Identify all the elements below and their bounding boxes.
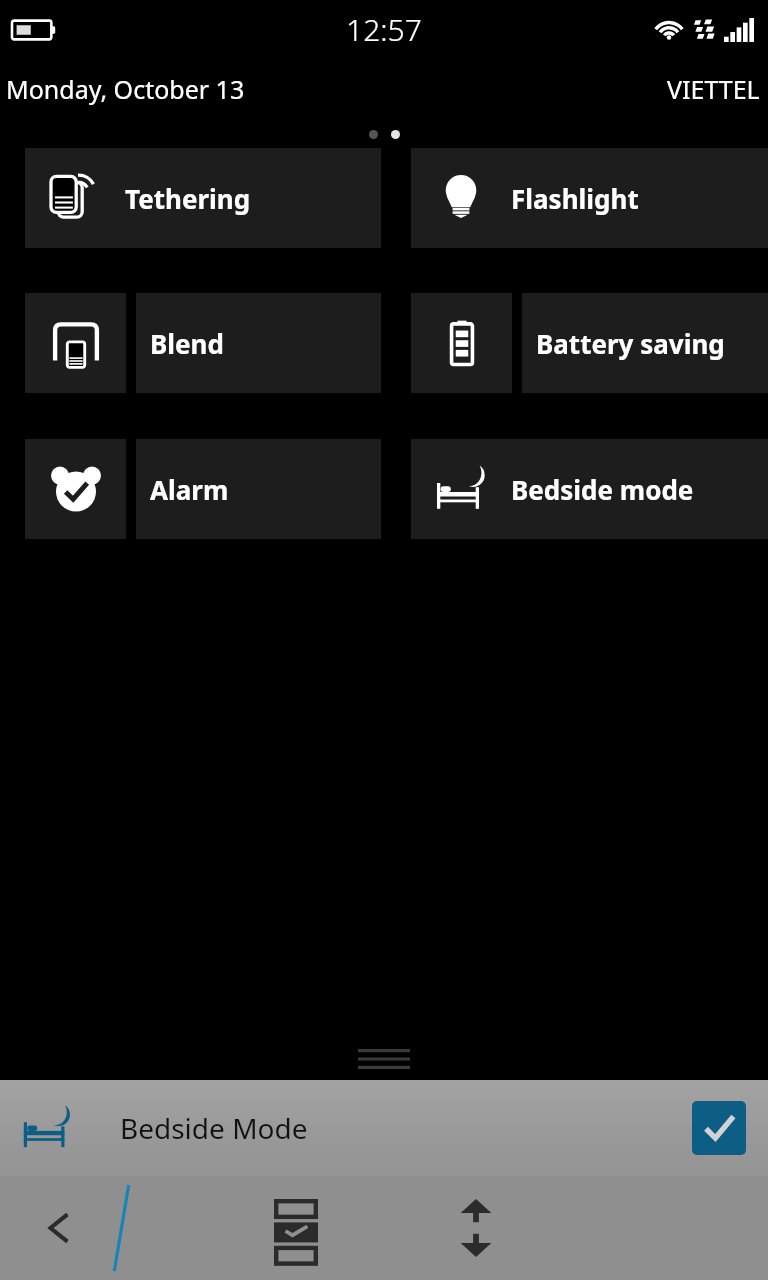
button[interactable]: Select [258, 1190, 334, 1266]
button[interactable]: Battery saving [411, 293, 768, 393]
button[interactable]: Flashlight [411, 148, 768, 248]
button[interactable]: Bedside Mode enabled [692, 1101, 746, 1155]
staticText: Tethering [125, 181, 251, 216]
staticText: Blend [150, 326, 224, 361]
staticText: Battery saving [536, 326, 725, 361]
button[interactable]: Alarm [25, 439, 381, 539]
staticText: Monday, October 13 [6, 72, 245, 106]
button[interactable]: Bedside Mode [0, 1080, 768, 1176]
staticText: Alarm [150, 472, 229, 507]
staticText: VIETTEL [667, 72, 760, 106]
staticText: Bedside mode [511, 472, 694, 507]
button[interactable]: Bedside mode [411, 439, 768, 539]
button[interactable]: Back [24, 1192, 96, 1264]
button[interactable]: Move [438, 1190, 514, 1266]
staticText: Flashlight [511, 181, 639, 216]
staticText: 12:57 [346, 9, 422, 50]
staticText: Bedside Mode [120, 1109, 308, 1147]
button[interactable]: Tethering [25, 148, 381, 248]
button[interactable]: Blend [25, 293, 381, 393]
